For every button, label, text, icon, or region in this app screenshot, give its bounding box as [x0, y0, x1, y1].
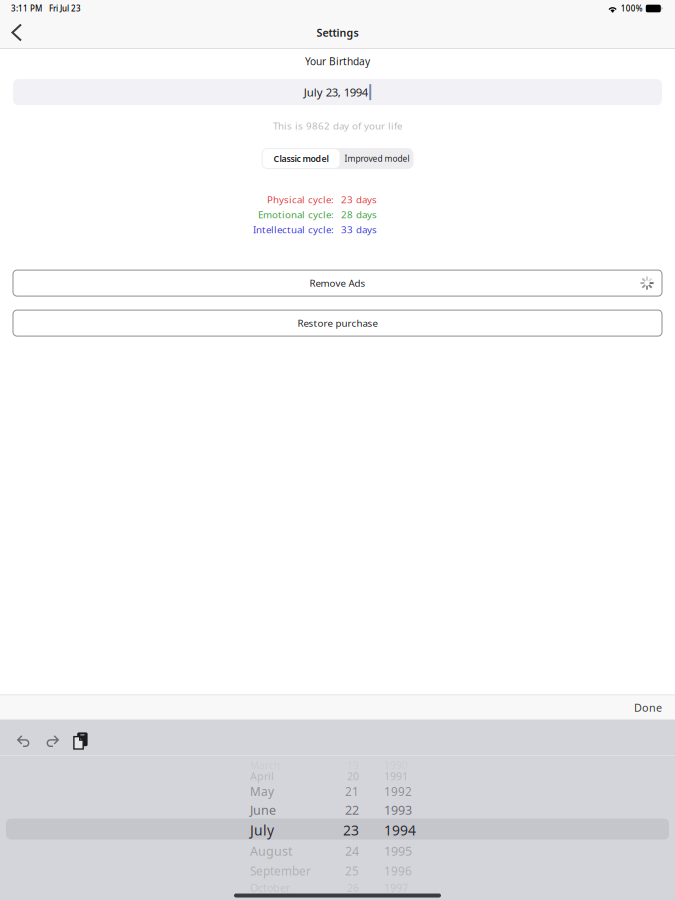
staticText: This is 9862 day of your life — [273, 119, 402, 132]
staticText: 1995 — [384, 843, 412, 859]
staticText: 100% — [621, 3, 643, 14]
staticText: 28 days — [341, 208, 377, 221]
staticText: 33 days — [341, 223, 377, 236]
staticText: 1996 — [384, 863, 412, 879]
staticText: 21 — [345, 784, 359, 799]
staticText: 20 — [347, 769, 359, 783]
staticText: Done — [634, 700, 662, 715]
staticText: 1997 — [384, 880, 408, 895]
staticText: October — [250, 880, 290, 895]
staticText: 24 — [345, 843, 359, 859]
staticText: 1993 — [384, 802, 412, 818]
button[interactable]: Done — [620, 696, 675, 719]
staticText: Settings — [316, 25, 358, 40]
button[interactable]: July 23, 1994 — [13, 79, 662, 105]
staticText: June — [250, 802, 276, 818]
button[interactable]: Back — [0, 17, 34, 48]
staticText: 26 — [347, 880, 359, 895]
staticText: Emotional cycle: — [258, 208, 334, 221]
staticText: 23 days — [341, 193, 377, 206]
button[interactable]: Classic model — [261, 148, 340, 169]
staticText: 3:11 PM — [11, 3, 42, 14]
button[interactable]: Restore purchase — [13, 310, 662, 336]
staticText: Classic model — [273, 153, 328, 164]
staticText: 1992 — [384, 784, 412, 799]
staticText: 1994 — [384, 821, 416, 839]
staticText: Improved model — [344, 153, 409, 164]
button[interactable]: Redo — [41, 722, 63, 752]
staticText: July 23, 1994 — [304, 85, 368, 100]
button[interactable]: Improved model — [340, 148, 413, 169]
staticText: 23 — [343, 821, 359, 839]
button[interactable]: Remove Ads — [13, 270, 662, 296]
staticText: 1991 — [384, 769, 408, 783]
staticText: Fri Jul 23 — [49, 3, 81, 14]
staticText: April — [250, 769, 274, 783]
staticText: Restore purchase — [297, 317, 377, 329]
staticText: Intellectual cycle: — [253, 223, 334, 236]
button[interactable]: Undo — [13, 722, 35, 752]
staticText: 22 — [345, 802, 359, 818]
staticText: May — [250, 784, 274, 799]
staticText: August — [250, 843, 293, 859]
button[interactable]: Paste — [69, 723, 91, 752]
staticText: Your Birthday — [305, 55, 370, 68]
staticText: Remove Ads — [309, 277, 365, 289]
staticText: September — [250, 863, 311, 879]
staticText: Physical cycle: — [267, 193, 334, 206]
staticText: July — [250, 821, 274, 839]
staticText: 25 — [345, 863, 359, 879]
